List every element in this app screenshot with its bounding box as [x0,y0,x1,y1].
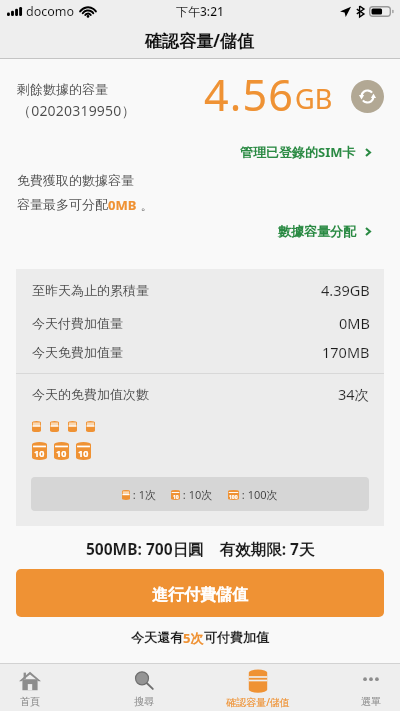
button[interactable]: 確認容量/儲值 [208,663,308,711]
staticText: 100 [229,494,238,501]
staticText: 10 [56,447,67,459]
staticText: 10 [173,494,179,501]
button[interactable]: 首頁 [0,663,80,711]
staticText: 4.39GB [321,280,370,300]
staticText: 0MB [339,313,370,333]
staticText: 至昨天為止的累積量 [32,282,149,298]
button[interactable]: 選單 [321,663,400,711]
button[interactable]: 搜尋 [94,663,194,711]
staticText: 今天的免費加值次數 [32,386,149,402]
staticText: 數據容量分配 [278,223,356,239]
staticText: 500MB: 700日圓 有效期限: 7天 [86,538,315,559]
staticText: 10 [78,447,89,459]
staticText: 0MB [108,196,137,214]
staticText: GB [295,80,333,117]
staticText: 4.56 [204,65,295,124]
staticText: 剩餘數據的容量 [17,81,108,97]
staticText: 進行付費儲值 [152,585,248,605]
staticText: 可付費加值 [204,629,269,645]
staticText: 免費獲取的數據容量 [17,172,134,188]
staticText: 。 [137,196,154,214]
staticText: 今天免費加值量 [32,344,123,360]
staticText: 容量最多可分配 [17,196,108,212]
staticText: 170MB [322,342,370,362]
staticText: 管理已登錄的SIM卡 [240,143,356,161]
staticText: 34次 [338,384,370,404]
staticText: （02020319950） [17,101,136,120]
staticText: : 10次 [180,487,213,502]
staticText: docomo [26,3,75,20]
button[interactable]: 進行付費儲值 [16,569,384,617]
staticText: 下午3:21 [176,3,224,19]
staticText: 選單 [361,695,381,708]
staticText: : 100次 [239,487,278,502]
staticText: 確認容量/儲值 [145,29,255,52]
button[interactable]: 管理已登錄的SIM卡 [240,138,371,166]
staticText: 確認容量/儲值 [226,695,290,709]
button[interactable]: 數據容量分配 [278,218,371,244]
button[interactable]: Refresh [351,80,384,113]
staticText: 今天還有 [131,629,183,645]
staticText: 首頁 [20,695,40,708]
staticText: 5次 [183,629,204,647]
staticText: : 1次 [130,487,156,502]
staticText: 搜尋 [134,695,154,708]
staticText: 今天付費加值量 [32,315,123,331]
staticText: 10 [34,447,45,459]
